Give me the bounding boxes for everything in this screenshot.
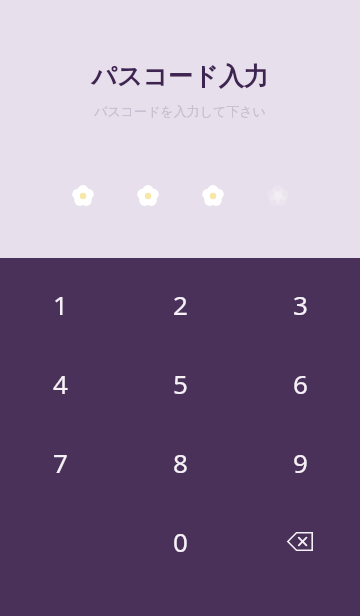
button[interactable]: 2 bbox=[120, 265, 240, 344]
button[interactable]: 6 bbox=[240, 344, 360, 423]
staticText: パスコードを入力して下さい bbox=[0, 103, 360, 119]
button[interactable]: 0 bbox=[120, 502, 240, 581]
button[interactable]: 7 bbox=[0, 423, 120, 502]
button[interactable]: 4 bbox=[0, 344, 120, 423]
staticText: 1 bbox=[53, 287, 68, 322]
staticText: 4 bbox=[53, 366, 68, 401]
button[interactable]: 3 bbox=[240, 265, 360, 344]
button[interactable]: 1 bbox=[0, 265, 120, 344]
staticText: 6 bbox=[293, 366, 308, 401]
staticText: 3 bbox=[293, 287, 308, 322]
staticText: 8 bbox=[173, 445, 188, 480]
staticText: 7 bbox=[53, 445, 68, 480]
staticText: 0 bbox=[173, 524, 188, 559]
staticText: パスコード入力 bbox=[0, 61, 360, 92]
staticText: 5 bbox=[173, 366, 188, 401]
staticText: 9 bbox=[293, 445, 308, 480]
staticText: 2 bbox=[173, 287, 188, 322]
button[interactable]: 8 bbox=[120, 423, 240, 502]
button[interactable]: 9 bbox=[240, 423, 360, 502]
button[interactable]: Backspace bbox=[240, 502, 360, 581]
button[interactable]: 5 bbox=[120, 344, 240, 423]
